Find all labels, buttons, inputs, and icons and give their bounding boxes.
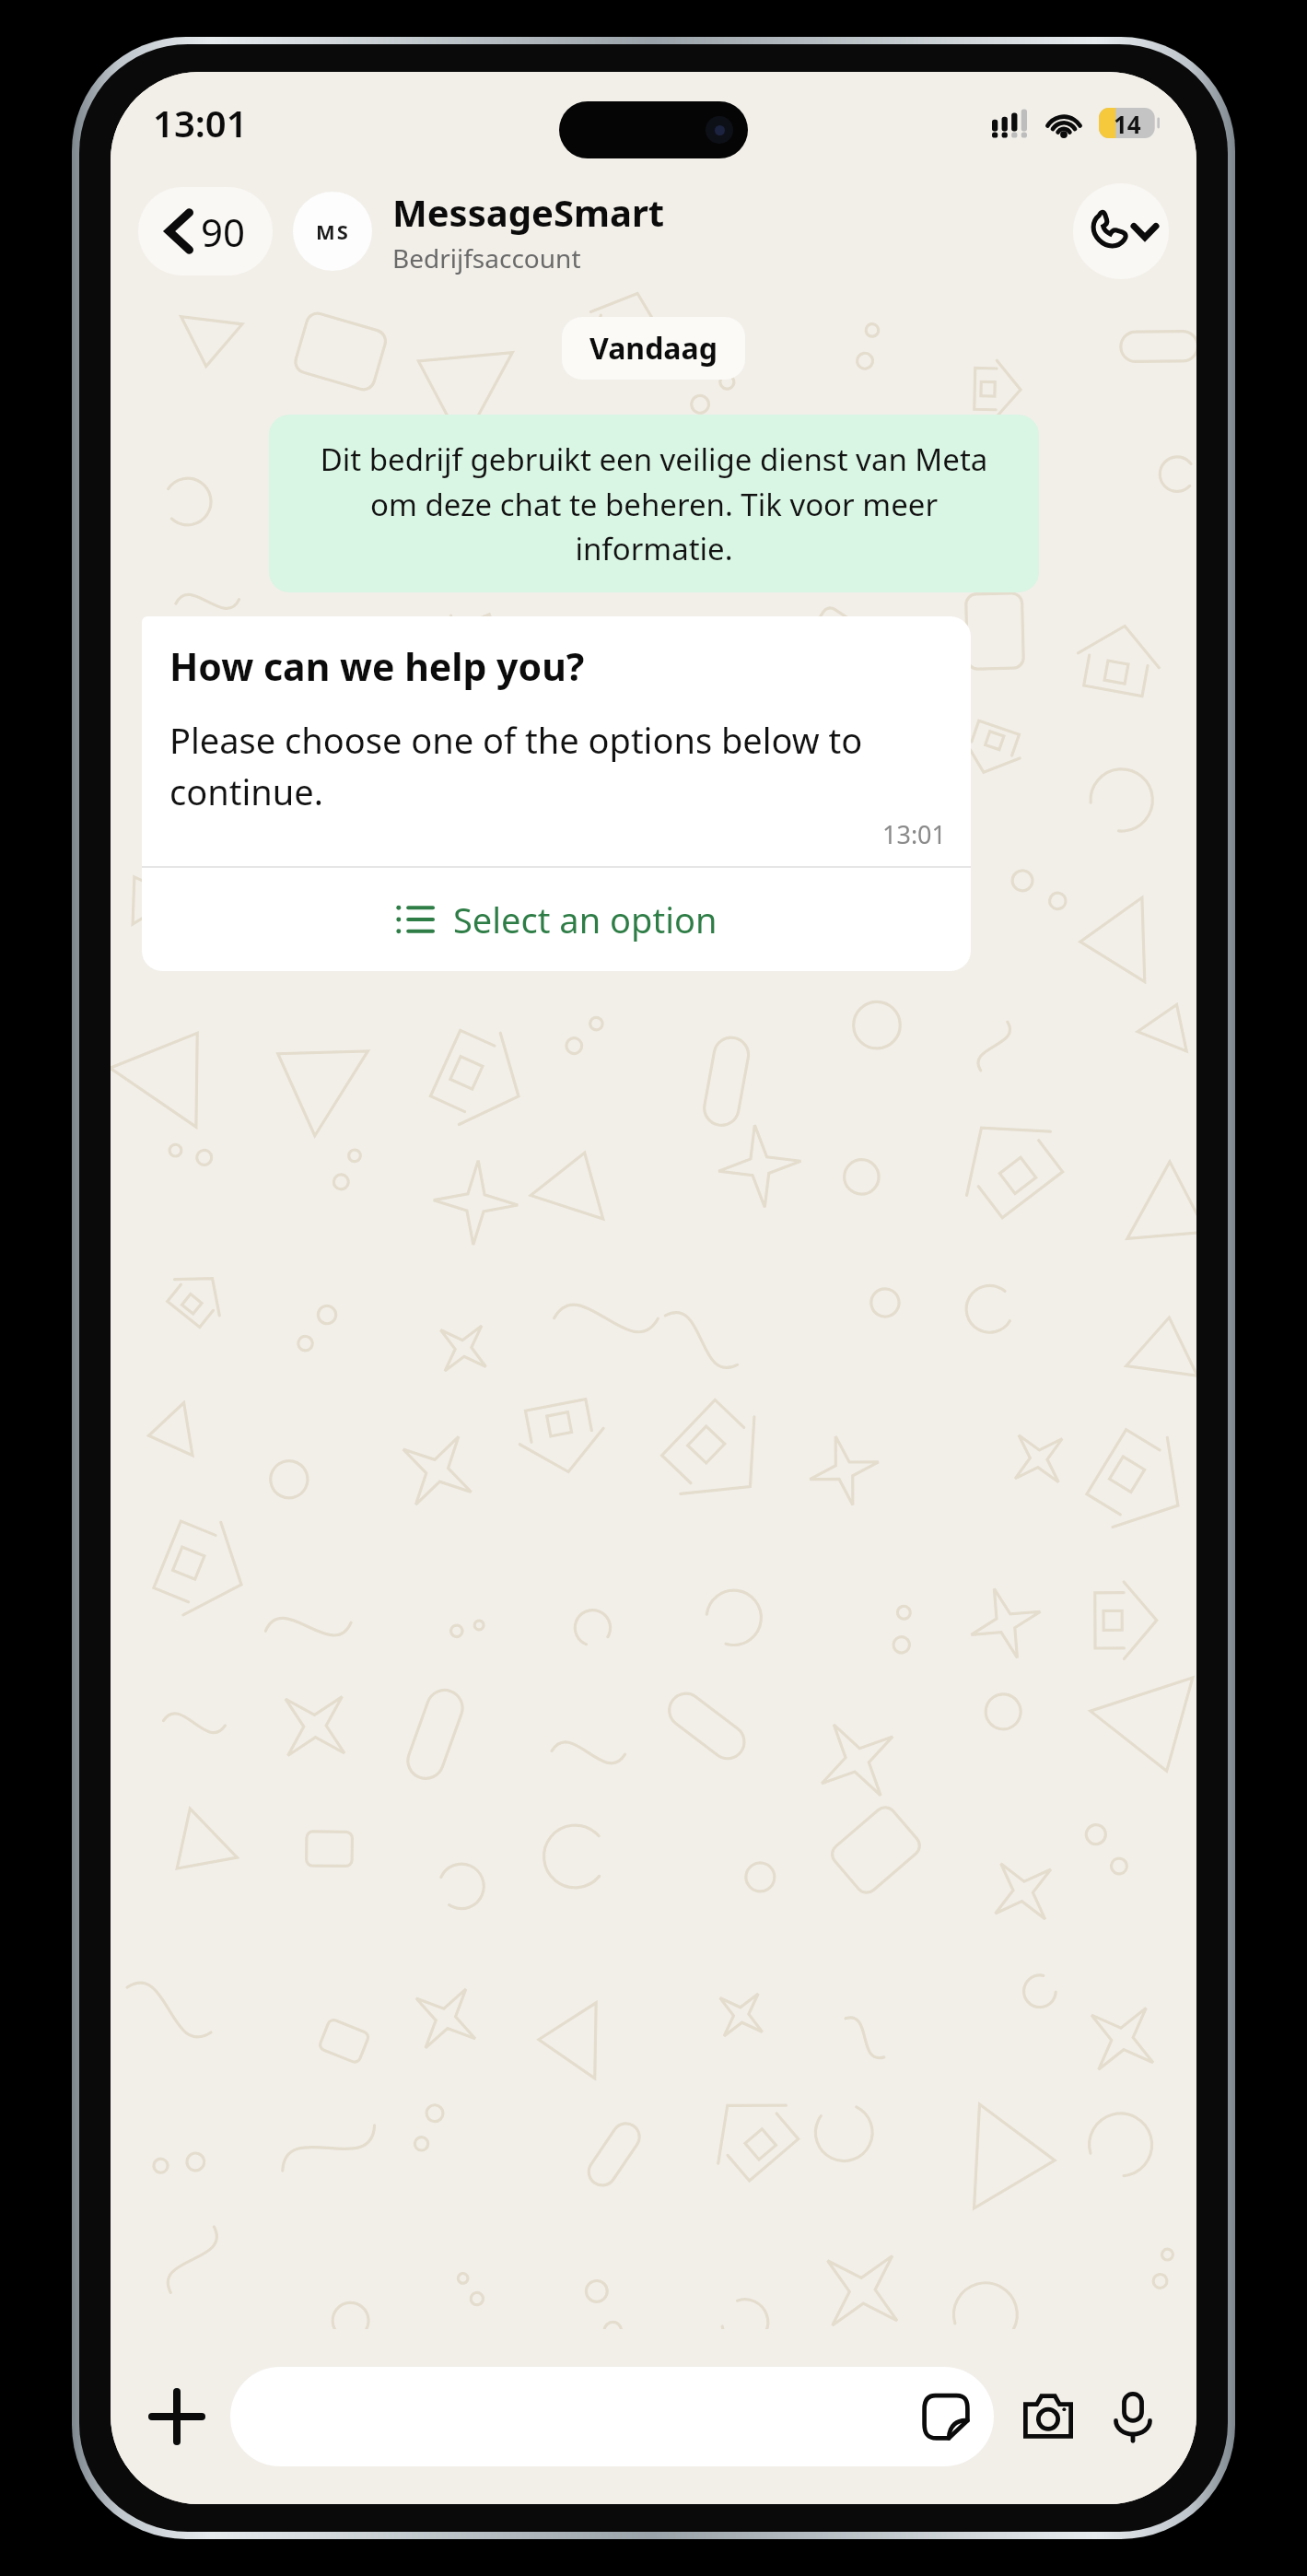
staticText: Bedrijfsaccount [392, 240, 581, 275]
staticText: Dit bedrijf gebruikt een veilige dienst … [297, 439, 1011, 568]
button[interactable]: MessageSmart [392, 187, 1073, 275]
staticText: 14 [1114, 108, 1141, 138]
button[interactable]: Dit bedrijf gebruikt een veilige dienst … [269, 415, 1039, 592]
staticText: 13:01 [882, 817, 947, 851]
button[interactable]: Select an option [142, 868, 971, 971]
staticText: 90 [201, 205, 246, 258]
staticText: Select an option [453, 896, 718, 943]
button[interactable]: Voice message [1093, 2377, 1173, 2456]
button[interactable] [230, 2367, 994, 2466]
button[interactable]: Vandaag [589, 328, 718, 369]
button[interactable]: Back, 90 unread [138, 187, 273, 275]
button[interactable]: Camera [1009, 2377, 1088, 2456]
button[interactable]: MS [293, 192, 372, 271]
staticText: MessageSmart [392, 187, 665, 237]
staticText: How can we help you? [169, 640, 585, 692]
staticText: Vandaag [589, 328, 718, 369]
staticText: MS [316, 217, 350, 245]
button[interactable]: Call [1073, 183, 1169, 279]
button[interactable]: Attach [134, 2374, 219, 2459]
staticText: Please choose one of the options below t… [169, 716, 947, 815]
staticText: 13:01 [153, 98, 248, 147]
